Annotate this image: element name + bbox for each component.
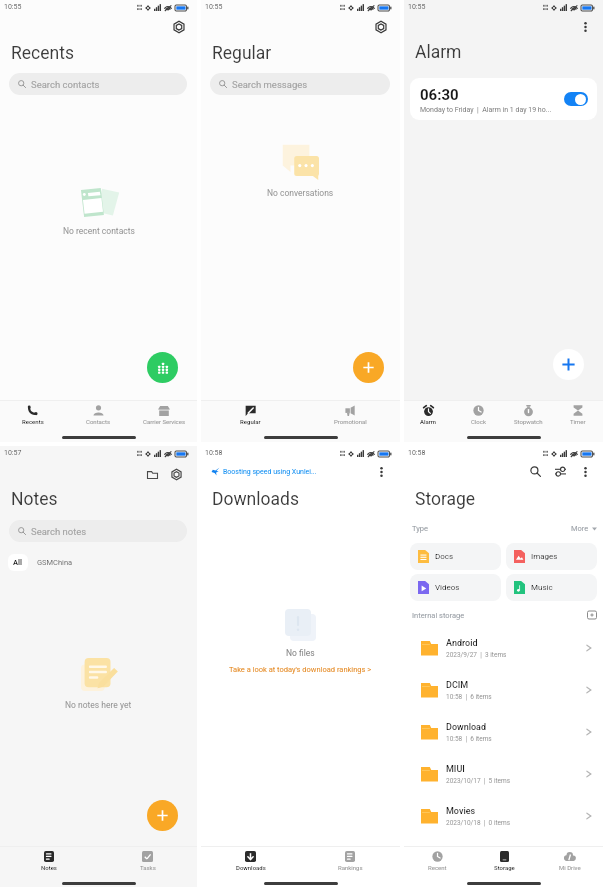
button[interactable]: Settings bbox=[169, 467, 184, 482]
staticText: 06:30 bbox=[420, 86, 459, 104]
button[interactable]: Mi Drive bbox=[537, 847, 603, 874]
staticText: MIUI bbox=[446, 764, 465, 775]
button[interactable]: GSMChina bbox=[31, 554, 79, 571]
staticText: No recent contacts bbox=[63, 226, 135, 236]
button[interactable]: Videos bbox=[410, 574, 501, 601]
staticText: Download bbox=[446, 722, 486, 733]
staticText: 10:55 bbox=[408, 3, 426, 11]
staticText: Promotional bbox=[334, 418, 367, 425]
button[interactable]: Clock bbox=[453, 401, 503, 428]
button[interactable]: More options bbox=[578, 464, 593, 479]
button[interactable]: Settings bbox=[373, 19, 388, 34]
staticText: Carrier Services bbox=[143, 418, 186, 425]
staticText: 10:55 bbox=[205, 3, 223, 11]
staticText: Downloads bbox=[236, 864, 266, 871]
button[interactable]: Search notes bbox=[9, 520, 187, 542]
staticText: 10:57 bbox=[4, 449, 22, 457]
button[interactable]: New note bbox=[147, 800, 178, 831]
button[interactable]: Stopwatch bbox=[503, 401, 553, 428]
staticText: Docs bbox=[435, 552, 454, 561]
button[interactable]: New message bbox=[353, 352, 384, 383]
staticText: Storage bbox=[415, 489, 476, 510]
button[interactable]: Images bbox=[506, 543, 597, 570]
staticText: Regular bbox=[212, 43, 272, 64]
staticText: No files bbox=[286, 648, 315, 658]
button[interactable]: Rankings bbox=[300, 847, 400, 874]
button[interactable]: Take a look at today's download rankings… bbox=[229, 665, 372, 674]
button[interactable]: Storage bbox=[471, 847, 537, 874]
staticText: Notes bbox=[11, 489, 58, 510]
button[interactable]: All bbox=[8, 554, 28, 571]
button[interactable]: More options bbox=[374, 464, 389, 479]
staticText: Clock bbox=[471, 418, 486, 425]
staticText: Regular bbox=[240, 418, 261, 425]
button[interactable]: 06:30 bbox=[410, 78, 597, 120]
staticText: 10:58 bbox=[205, 449, 223, 457]
button[interactable]: Docs bbox=[410, 543, 501, 570]
staticText: Storage bbox=[494, 864, 515, 871]
button[interactable]: Add alarm bbox=[553, 349, 584, 380]
staticText: Images bbox=[531, 552, 558, 561]
staticText: No conversations bbox=[267, 188, 334, 198]
staticText: Alarm bbox=[420, 418, 437, 425]
button[interactable]: Carrier Services bbox=[131, 401, 197, 428]
button[interactable]: Alarm bbox=[404, 401, 453, 428]
button[interactable]: Regular bbox=[201, 401, 300, 428]
button[interactable]: Downloads bbox=[201, 847, 300, 874]
button[interactable]: Folders bbox=[145, 467, 160, 482]
staticText: Stopwatch bbox=[514, 418, 543, 425]
button[interactable]: Settings bbox=[171, 19, 186, 34]
staticText: Recents bbox=[11, 43, 74, 64]
staticText: DCIM bbox=[446, 680, 469, 691]
staticText: 10:58 bbox=[408, 449, 426, 457]
staticText: Recent bbox=[428, 864, 447, 871]
button[interactable]: Timer bbox=[553, 401, 603, 428]
staticText: 10:55 bbox=[4, 3, 22, 11]
staticText: 10:58 | 6 items bbox=[446, 735, 492, 743]
staticText: Search notes bbox=[31, 526, 87, 537]
staticText: 2023/9/27 | 3 items bbox=[446, 651, 507, 659]
button[interactable]: Recent bbox=[404, 847, 471, 874]
staticText: GSMChina bbox=[37, 558, 73, 567]
staticText: More bbox=[571, 524, 589, 533]
button[interactable]: MIUI bbox=[404, 753, 603, 795]
staticText: Search messages bbox=[232, 79, 308, 90]
button[interactable]: Dial pad bbox=[147, 352, 178, 383]
button[interactable]: Tasks bbox=[98, 847, 197, 874]
staticText: 10:58 | 6 items bbox=[446, 693, 492, 701]
staticText: Monday to Friday | Alarm in 1 day 19 ho.… bbox=[420, 106, 552, 114]
button[interactable]: Search contacts bbox=[9, 73, 187, 95]
button[interactable]: Recents bbox=[0, 401, 65, 428]
staticText: Mi Drive bbox=[559, 864, 581, 871]
staticText: Take a look at today's download rankings… bbox=[229, 665, 372, 674]
staticText: Boosting speed using Xunlei... bbox=[223, 468, 317, 476]
button[interactable]: More options bbox=[578, 19, 593, 34]
button[interactable]: Music bbox=[506, 574, 597, 601]
button[interactable]: Movies bbox=[404, 795, 603, 837]
button[interactable]: New folder bbox=[587, 610, 597, 620]
staticText: Search contacts bbox=[31, 79, 100, 90]
button[interactable]: More bbox=[571, 524, 597, 533]
staticText: Movies bbox=[446, 806, 476, 817]
staticText: Tasks bbox=[140, 864, 156, 871]
button[interactable]: Alarm toggle bbox=[564, 92, 588, 106]
staticText: Timer bbox=[570, 418, 586, 425]
staticText: Android bbox=[446, 638, 478, 649]
staticText: 2023/10/18 | 0 items bbox=[446, 819, 511, 827]
button[interactable]: DCIM bbox=[404, 669, 603, 711]
button[interactable]: Download bbox=[404, 711, 603, 753]
staticText: All bbox=[13, 558, 23, 567]
button[interactable]: Android bbox=[404, 627, 603, 669]
button[interactable]: Notes bbox=[0, 847, 98, 874]
staticText: Videos bbox=[435, 583, 460, 592]
staticText: Alarm bbox=[415, 42, 462, 63]
button[interactable]: Contacts bbox=[65, 401, 131, 428]
button[interactable]: Search messages bbox=[210, 73, 390, 95]
button[interactable]: Sort bbox=[553, 464, 568, 479]
button[interactable]: Search bbox=[528, 464, 543, 479]
button[interactable]: Promotional bbox=[300, 401, 400, 428]
staticText: Music bbox=[531, 583, 553, 592]
staticText: Notes bbox=[41, 864, 57, 871]
staticText: Internal storage bbox=[412, 611, 465, 620]
staticText: Recents bbox=[22, 418, 44, 425]
